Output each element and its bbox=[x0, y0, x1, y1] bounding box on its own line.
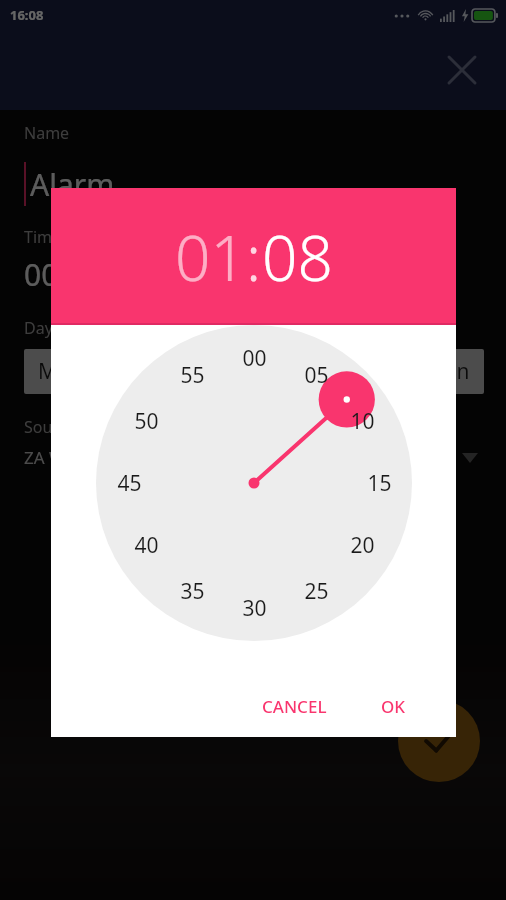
staticText: : bbox=[246, 215, 262, 299]
staticText: OK bbox=[381, 695, 406, 718]
staticText: 25 bbox=[304, 577, 329, 606]
staticText: Sound bbox=[24, 416, 73, 438]
button[interactable]: Sun bbox=[432, 357, 470, 386]
staticText: 15 bbox=[367, 469, 392, 498]
staticText: 08 bbox=[262, 215, 333, 299]
staticText: 40 bbox=[134, 531, 159, 560]
button[interactable]: 01 bbox=[175, 215, 246, 299]
staticText: Name bbox=[24, 122, 70, 144]
staticText: ZA Wake up bbox=[24, 446, 119, 469]
button[interactable]: 08 bbox=[262, 215, 333, 299]
staticText: 50 bbox=[134, 407, 159, 436]
button[interactable]: Close bbox=[440, 48, 484, 92]
button[interactable]: OK bbox=[365, 685, 422, 728]
staticText: 16:08 bbox=[10, 6, 44, 24]
staticText: CANCEL bbox=[262, 695, 327, 718]
staticText: 20 bbox=[350, 531, 375, 560]
button[interactable]: Mon bbox=[38, 357, 83, 386]
staticText: 00:00 bbox=[24, 254, 101, 295]
staticText: 00 bbox=[242, 344, 267, 373]
staticText: 05 bbox=[304, 361, 329, 390]
staticText: Alarm bbox=[30, 164, 115, 205]
staticText: Mon bbox=[38, 357, 83, 386]
button[interactable]: CANCEL bbox=[246, 685, 343, 728]
staticText: Days bbox=[24, 317, 61, 339]
button[interactable]: Save alarm bbox=[398, 700, 480, 782]
staticText: 55 bbox=[180, 361, 205, 390]
staticText: 10 bbox=[350, 407, 375, 436]
staticText: 35 bbox=[180, 577, 205, 606]
button[interactable]: 00 bbox=[96, 325, 412, 641]
staticText: 01 bbox=[175, 215, 246, 299]
staticText: 45 bbox=[117, 469, 142, 498]
staticText: Sun bbox=[432, 357, 470, 386]
staticText: 30 bbox=[242, 594, 267, 623]
staticText: Time bbox=[24, 226, 62, 248]
